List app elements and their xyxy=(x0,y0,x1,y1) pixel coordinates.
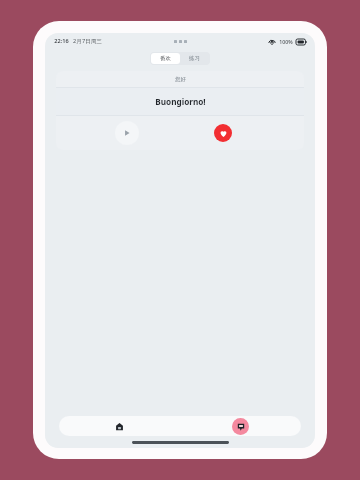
staticText: 100% xyxy=(279,38,293,45)
button[interactable]: Home xyxy=(59,416,180,436)
button[interactable]: 番欢 xyxy=(151,53,180,64)
staticText: 您好 xyxy=(175,76,186,83)
staticText: 番欢 xyxy=(160,55,171,62)
button[interactable]: 练习 xyxy=(180,53,209,64)
button[interactable]: Phrases xyxy=(180,416,301,436)
button[interactable]: Favourite xyxy=(214,124,232,142)
staticText: 2月7日周三 xyxy=(73,37,102,45)
staticText: Buongiorno! xyxy=(155,96,206,107)
button[interactable]: Play pronunciation xyxy=(115,121,139,145)
staticText: 22:16 xyxy=(54,37,69,45)
staticText: 练习 xyxy=(189,55,200,62)
